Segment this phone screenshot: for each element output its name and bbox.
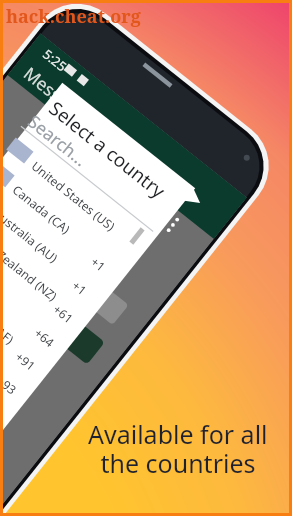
button[interactable]: [0, 0, 292, 516]
